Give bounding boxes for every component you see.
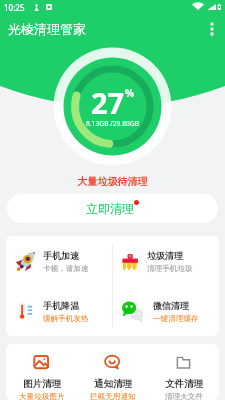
staticText: % — [125, 86, 135, 100]
button[interactable]: 垃圾清理 — [112, 236, 219, 286]
button[interactable]: 立即清理 — [7, 194, 218, 223]
staticText: 大量垃圾图片 — [19, 392, 65, 400]
button[interactable]: 手机加速 — [6, 236, 112, 286]
staticText: 通知清理 — [94, 378, 132, 390]
staticText: 垃圾清理 — [147, 250, 183, 261]
button[interactable]: 微信清理 — [112, 286, 219, 336]
staticText: 10:25 — [4, 2, 25, 13]
staticText: 一键清理缓存 — [153, 314, 199, 324]
staticText: 27 — [91, 83, 125, 122]
staticText: 文件清理 — [165, 378, 203, 390]
button[interactable]: 通知清理 — [77, 344, 148, 400]
staticText: 卡顿，请加速 — [43, 264, 89, 274]
button[interactable]: 图片清理 — [6, 344, 77, 400]
staticText: 手机降温 — [43, 300, 79, 311]
button[interactable]: 文件清理 — [148, 344, 219, 400]
staticText: 清理手机垃圾 — [147, 264, 193, 274]
staticText: 大量垃圾待清理 — [0, 175, 225, 188]
staticText: 立即清理 — [86, 201, 134, 216]
staticText: 图片清理 — [23, 378, 61, 390]
staticText: 缓解手机发热 — [43, 314, 89, 324]
button[interactable]: More options — [202, 19, 222, 39]
staticText: 清理大文件 — [165, 392, 203, 400]
staticText: 微信清理 — [153, 300, 189, 311]
staticText: 8.13GB /29.80GB — [86, 119, 140, 128]
staticText: 拦截无用通知 — [90, 392, 136, 400]
staticText: 光棱清理管家 — [8, 21, 86, 37]
staticText: 手机加速 — [43, 250, 79, 261]
button[interactable]: 手机降温 — [6, 286, 112, 336]
